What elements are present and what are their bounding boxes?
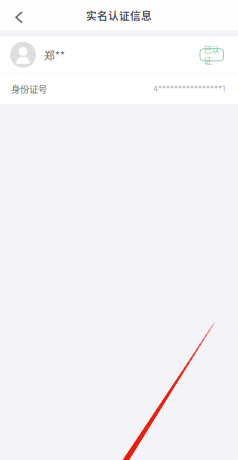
staticText: 郑** (44, 47, 65, 62)
button[interactable]: Back (0, 0, 38, 30)
button[interactable]: 郑** (0, 37, 238, 73)
staticText: 4****************1 (153, 84, 225, 93)
button[interactable]: 身份证号 (0, 74, 238, 104)
staticText: 实名认证信息 (86, 7, 152, 23)
staticText: 已认证 (204, 43, 220, 66)
staticText: 身份证号 (11, 82, 47, 95)
